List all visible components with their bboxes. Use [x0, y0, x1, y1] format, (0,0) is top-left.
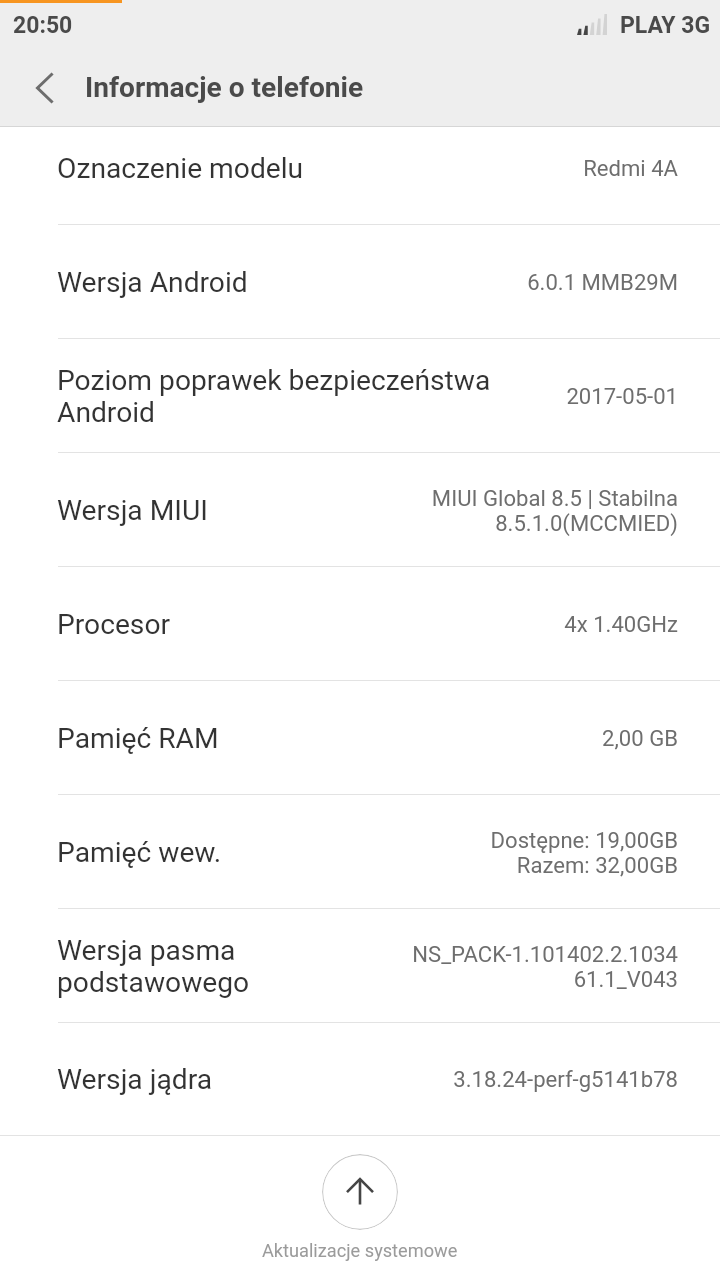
staticText: 6.0.1 MMB29M: [527, 269, 678, 295]
button[interactable]: Poziom poprawek bezpieczeństwa Android: [0, 339, 720, 453]
staticText: Wersja Android: [57, 266, 517, 299]
button[interactable]: Wersja pasma podstawowego: [0, 909, 720, 1023]
button[interactable]: Wersja MIUI: [0, 453, 720, 567]
staticText: Poziom poprawek bezpieczeństwa Android: [57, 364, 556, 429]
staticText: PLAY 3G: [620, 12, 711, 39]
button[interactable]: Wersja Android: [0, 225, 720, 339]
staticText: Wersja jądra: [57, 1063, 443, 1096]
staticText: Oznaczenie modelu: [57, 152, 573, 185]
staticText: Redmi 4A: [583, 155, 678, 181]
button[interactable]: Oznaczenie modelu: [0, 127, 720, 225]
staticText: 2017-05-01: [566, 383, 678, 409]
button[interactable]: Pamięć RAM: [0, 681, 720, 795]
staticText: NS_PACK-1.101402.2.1034 61.1_V043: [412, 941, 678, 992]
staticText: 20:50: [13, 12, 73, 39]
button[interactable]: Back: [0, 57, 88, 127]
button[interactable]: Pamięć wew.: [0, 795, 720, 909]
staticText: Pamięć RAM: [57, 722, 592, 755]
button[interactable]: Wersja jądra: [0, 1023, 720, 1135]
staticText: Procesor: [57, 608, 554, 641]
button[interactable]: Procesor: [0, 567, 720, 681]
staticText: Informacje o telefonie: [85, 71, 364, 104]
staticText: Wersja pasma podstawowego: [57, 934, 402, 999]
staticText: 4x 1.40GHz: [564, 611, 678, 637]
staticText: Pamięć wew.: [57, 836, 480, 869]
staticText: MIUI Global 8.5 | Stabilna 8.5.1.0(MCCMI…: [431, 485, 678, 536]
staticText: Dostępne: 19,00GB Razem: 32,00GB: [490, 827, 678, 878]
staticText: Wersja MIUI: [57, 494, 421, 527]
staticText: 2,00 GB: [602, 725, 678, 751]
staticText: 3.18.24-perf-g5141b78: [453, 1066, 678, 1092]
button[interactable]: System updates: [322, 1154, 398, 1230]
staticText: Aktualizacje systemowe: [262, 1240, 458, 1261]
